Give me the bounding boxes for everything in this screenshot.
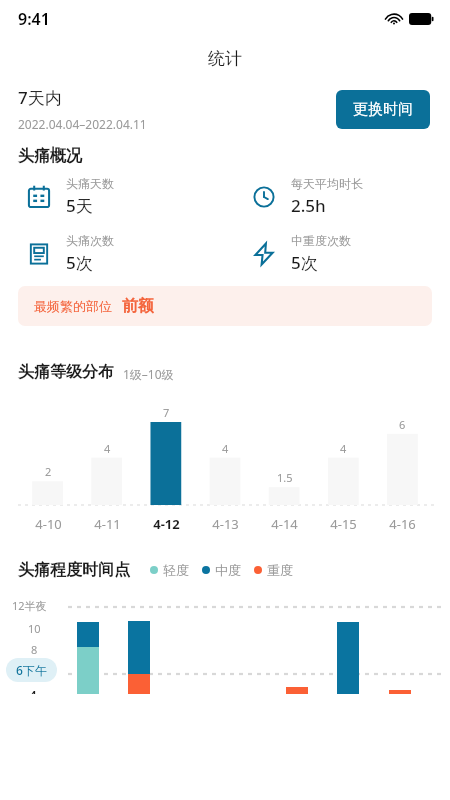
staticText: 最频繁的部位 — [34, 298, 112, 314]
staticText: 8 — [31, 642, 38, 657]
staticText: 7天内 — [18, 86, 62, 109]
staticText: 每天平均时长 — [291, 176, 363, 191]
staticText: 4-15 — [330, 515, 357, 533]
staticText: 2022.04.04–2022.04.11 — [18, 116, 147, 132]
staticText: 2.5h — [291, 194, 326, 217]
staticText: 4-16 — [389, 515, 416, 533]
button[interactable]: 头痛次数 — [26, 233, 225, 274]
staticText: 5次 — [291, 251, 318, 274]
staticText: 中度 — [215, 562, 241, 578]
staticText: 前额 — [122, 296, 154, 316]
staticText: 9:41 — [18, 8, 50, 30]
staticText: 4 — [340, 441, 347, 456]
staticText: 统计 — [208, 48, 242, 69]
staticText: 2 — [45, 464, 52, 479]
staticText: 4-12 — [153, 515, 180, 533]
staticText: 4 — [104, 441, 111, 456]
staticText: 4-11 — [94, 515, 121, 533]
staticText: 1.5 — [277, 470, 293, 485]
staticText: 头痛程度时间点 — [18, 560, 130, 580]
staticText: 6下午 — [16, 662, 47, 678]
staticText: 1级–10级 — [123, 366, 174, 382]
staticText: 7 — [163, 405, 170, 420]
staticText: 4-14 — [271, 515, 298, 533]
button[interactable]: 最频繁的部位 — [18, 286, 432, 326]
button[interactable]: 每天平均时长 — [251, 176, 450, 217]
staticText: 12半夜 — [12, 598, 47, 613]
button[interactable]: 头痛天数 — [26, 176, 225, 217]
staticText: 4-13 — [212, 515, 239, 533]
staticText: 头痛次数 — [66, 233, 114, 248]
staticText: 中重度次数 — [291, 233, 351, 248]
staticText: 4-10 — [35, 515, 62, 533]
staticText: 5天 — [66, 194, 93, 217]
button[interactable]: 中重度次数 — [251, 233, 450, 274]
staticText: 4 — [30, 687, 37, 694]
staticText: 4 — [222, 441, 229, 456]
staticText: 5次 — [66, 251, 93, 274]
staticText: 更换时间 — [353, 100, 413, 119]
staticText: 重度 — [267, 562, 293, 578]
staticText: 6 — [399, 417, 406, 432]
button[interactable]: 更换时间 — [336, 90, 430, 129]
staticText: 10 — [28, 621, 41, 636]
staticText: 头痛等级分布 — [18, 362, 114, 382]
staticText: 轻度 — [163, 562, 189, 578]
staticText: 头痛天数 — [66, 176, 114, 191]
staticText: 头痛概况 — [18, 146, 82, 166]
